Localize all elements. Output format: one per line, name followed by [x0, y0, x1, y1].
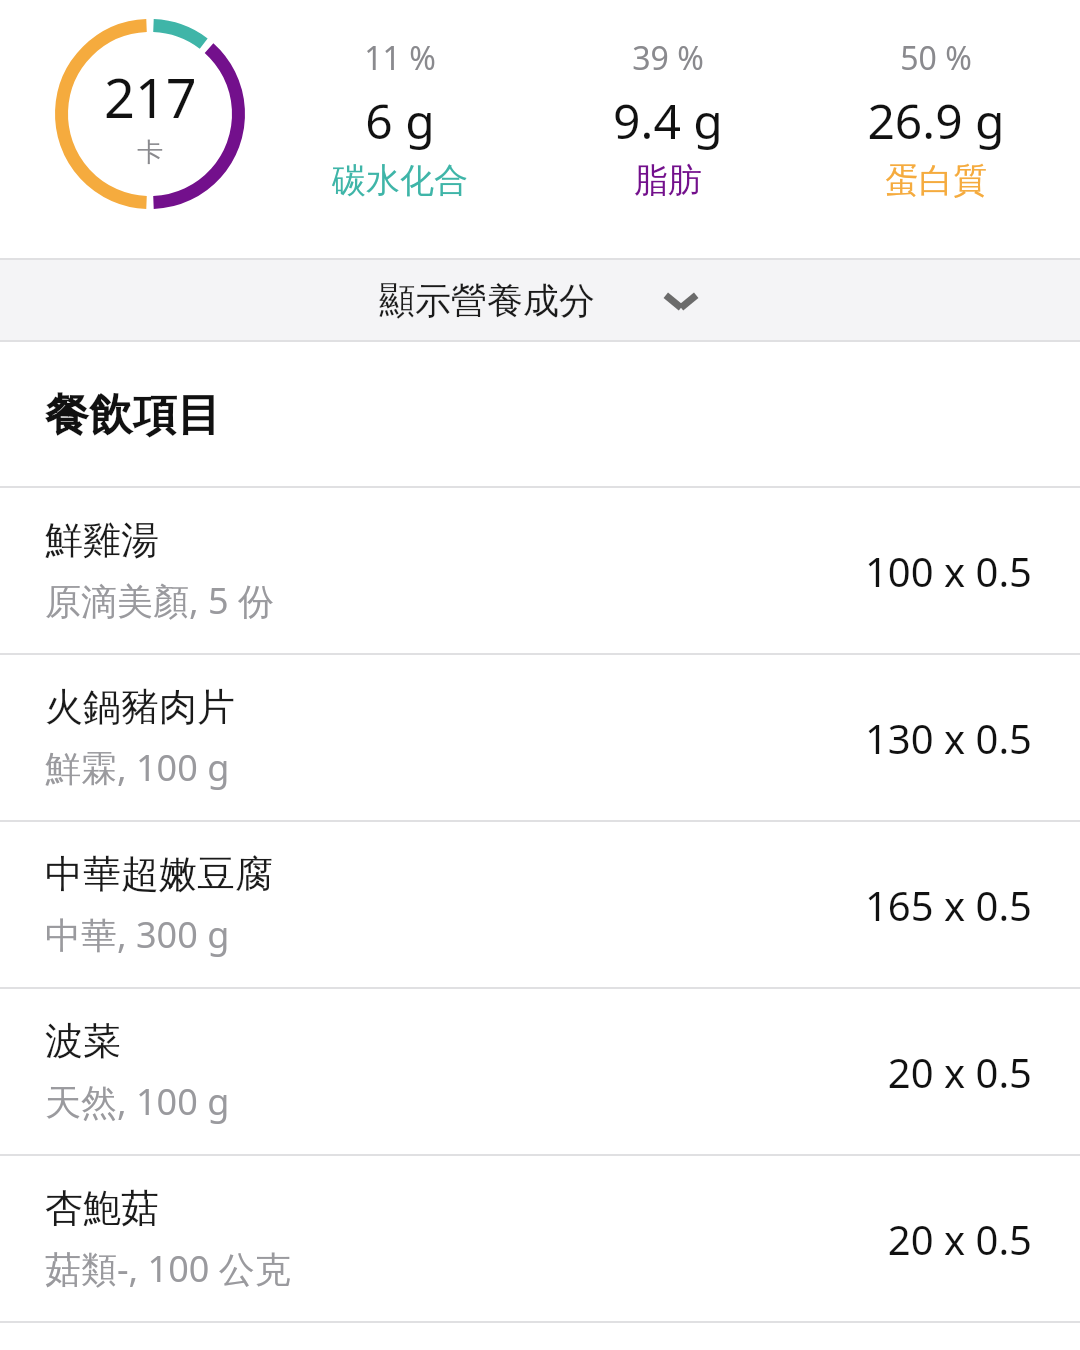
button[interactable]: 顯示營養成分: [0, 258, 1080, 342]
staticText: 菇類-, 100 公克: [45, 1244, 291, 1293]
button[interactable]: 鮮雞湯: [0, 488, 1080, 653]
staticText: 39 %: [632, 36, 704, 80]
staticText: 鮮霖, 100 g: [45, 743, 230, 792]
staticText: 中華, 300 g: [45, 910, 230, 959]
staticText: 50 %: [900, 36, 972, 80]
staticText: 165 x 0.5: [864, 878, 1032, 932]
staticText: 卡: [137, 136, 163, 169]
staticText: 碳水化合: [332, 159, 468, 202]
staticText: 20 x 0.5: [887, 1212, 1032, 1266]
staticText: 杏鮑菇: [45, 1184, 159, 1232]
staticText: 20 x 0.5: [887, 1045, 1032, 1099]
staticText: 130 x 0.5: [864, 711, 1032, 765]
staticText: 217: [104, 60, 197, 134]
staticText: 餐飲項目: [45, 388, 221, 443]
staticText: 中華超嫩豆腐: [45, 850, 273, 898]
staticText: 9.4 g: [613, 88, 723, 153]
staticText: 脂肪: [634, 159, 702, 202]
staticText: 6 g: [365, 88, 435, 153]
staticText: 火鍋豬肉片: [45, 683, 235, 731]
button[interactable]: 波菜: [0, 989, 1080, 1154]
staticText: 11 %: [364, 36, 436, 80]
staticText: 天然, 100 g: [45, 1077, 230, 1126]
button[interactable]: 中華超嫩豆腐: [0, 822, 1080, 987]
staticText: 100 x 0.5: [864, 544, 1032, 598]
staticText: 波菜: [45, 1017, 121, 1065]
staticText: 蛋白質: [885, 159, 987, 202]
staticText: 26.9 g: [867, 88, 1005, 153]
staticText: 顯示營養成分: [379, 278, 595, 323]
staticText: 鮮雞湯: [45, 516, 159, 564]
staticText: 原滴美顏, 5 份: [45, 576, 274, 625]
button[interactable]: 杏鮑菇: [0, 1156, 1080, 1321]
button[interactable]: 火鍋豬肉片: [0, 655, 1080, 820]
